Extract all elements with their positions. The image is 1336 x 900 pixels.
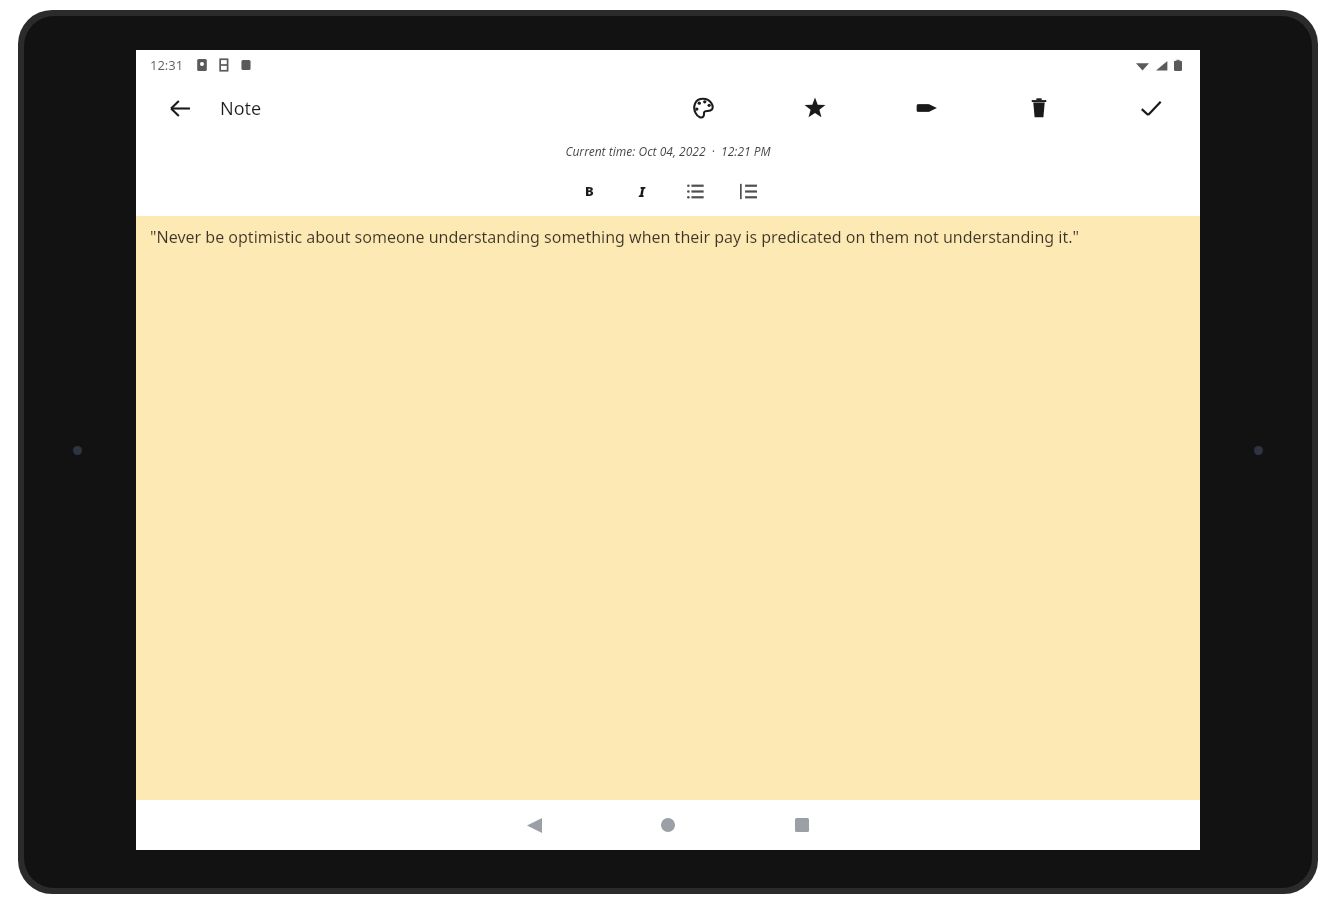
button[interactable]: Back: [162, 90, 198, 126]
staticText: I: [639, 182, 645, 201]
button[interactable]: Home: [640, 800, 696, 850]
button[interactable]: Back: [506, 800, 562, 850]
button[interactable]: Save: [1128, 85, 1174, 131]
button[interactable]: Color: [680, 85, 726, 131]
button[interactable]: Delete: [1016, 85, 1062, 131]
staticText: B: [585, 182, 594, 200]
staticText: "Never be optimistic about someone under…: [150, 226, 1190, 248]
button[interactable]: Label: [904, 85, 950, 131]
button[interactable]: Italic: [621, 170, 663, 212]
button[interactable]: Bulleted list: [674, 170, 716, 212]
staticText: Current time: Oct 04, 2022 · 12:21 PM: [565, 143, 771, 159]
staticText: 12:31: [150, 56, 184, 74]
button[interactable]: Bold: [568, 170, 610, 212]
button[interactable]: Recents: [774, 800, 830, 850]
button[interactable]: Favorite: [792, 85, 838, 131]
button[interactable]: Checklist: [727, 170, 769, 212]
staticText: Note: [220, 96, 262, 121]
